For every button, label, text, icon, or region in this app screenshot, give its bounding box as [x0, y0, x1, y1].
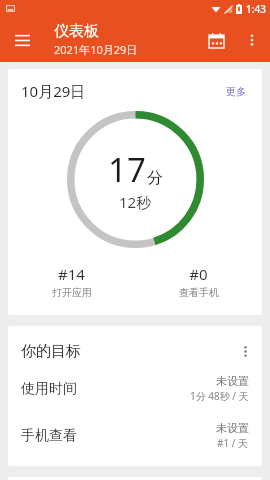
button[interactable]: #0 — [135, 262, 262, 301]
button[interactable]: Goal options — [230, 336, 260, 366]
staticText: 1:43 — [246, 2, 266, 16]
button[interactable]: Open navigation menu — [0, 18, 44, 62]
staticText: 17 — [108, 147, 146, 192]
staticText: #0 — [189, 264, 208, 284]
staticText: 你的目标 — [21, 342, 81, 361]
button[interactable]: 10月29日 — [8, 69, 262, 315]
staticText: 1分 48秒 / 天 — [190, 389, 249, 403]
staticText: 2021年10月29日 — [54, 42, 138, 57]
button[interactable]: Pick date — [196, 20, 236, 60]
staticText: #14 — [58, 264, 85, 284]
staticText: 未设置 — [216, 374, 249, 388]
button[interactable]: 更多 — [223, 83, 249, 100]
button[interactable]: #14 — [8, 262, 135, 301]
staticText: 查看手机 — [179, 286, 219, 299]
staticText: 手机查看 — [21, 427, 77, 445]
staticText: 12秒 — [119, 192, 152, 212]
staticText: 打开应用 — [52, 286, 92, 299]
staticText: 分 — [147, 168, 163, 188]
staticText: 10月29日 — [21, 81, 86, 101]
button[interactable]: More options — [236, 24, 268, 56]
button[interactable]: 使用时间 — [8, 372, 262, 405]
staticText: 更多 — [226, 85, 246, 98]
staticText: 未设置 — [216, 421, 249, 435]
button[interactable]: 手机查看 — [8, 419, 262, 452]
staticText: #1 / 天 — [217, 436, 249, 450]
staticText: 仪表板 — [54, 22, 99, 41]
staticText: 使用时间 — [21, 380, 77, 398]
